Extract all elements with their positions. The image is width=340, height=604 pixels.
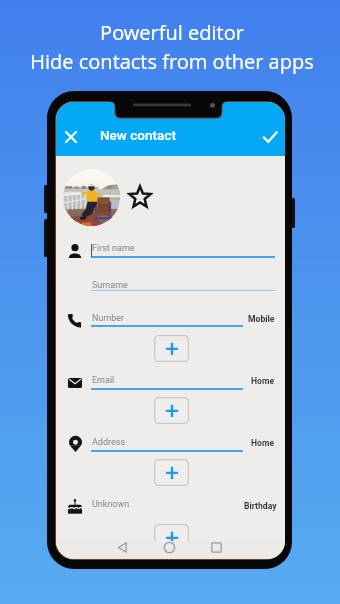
staticText: Mobile bbox=[248, 314, 275, 324]
button[interactable]: Home bbox=[251, 376, 275, 386]
button[interactable] bbox=[91, 277, 275, 294]
button[interactable]: Close bbox=[61, 127, 81, 147]
button[interactable] bbox=[91, 434, 243, 452]
button[interactable]: Mobile bbox=[248, 314, 275, 324]
button[interactable]: Add another bbox=[154, 524, 189, 551]
staticText: Home bbox=[251, 376, 275, 386]
staticText: Home bbox=[251, 438, 275, 448]
staticText: Email bbox=[92, 375, 115, 386]
button[interactable]: Back bbox=[112, 538, 132, 556]
button[interactable]: New contact bbox=[100, 127, 176, 143]
button[interactable]: Save contact bbox=[260, 127, 280, 147]
staticText: Address bbox=[92, 437, 126, 448]
button[interactable] bbox=[91, 240, 275, 258]
staticText: First name bbox=[92, 243, 135, 254]
staticText: Birthday bbox=[244, 501, 277, 511]
button[interactable]: Mark as favourite bbox=[127, 184, 153, 210]
button[interactable] bbox=[91, 496, 243, 514]
button[interactable]: Add another bbox=[154, 459, 189, 486]
button[interactable]: Add another bbox=[154, 335, 189, 362]
button[interactable] bbox=[91, 310, 243, 328]
staticText: Number bbox=[92, 313, 125, 324]
staticText: Surname bbox=[92, 280, 128, 291]
staticText: Powerful editor bbox=[100, 19, 244, 46]
staticText: Hide contacts from other apps bbox=[30, 48, 314, 75]
button[interactable]: Add another bbox=[154, 397, 189, 424]
button[interactable]: Recent apps bbox=[206, 538, 226, 556]
staticText: New contact bbox=[100, 127, 176, 143]
button[interactable] bbox=[91, 372, 243, 390]
button[interactable]: Home bbox=[159, 538, 179, 556]
staticText: Unknown bbox=[92, 499, 130, 510]
button[interactable]: Home bbox=[251, 438, 275, 448]
button[interactable]: Birthday bbox=[244, 501, 277, 511]
button[interactable]: Contact photo bbox=[63, 169, 120, 226]
